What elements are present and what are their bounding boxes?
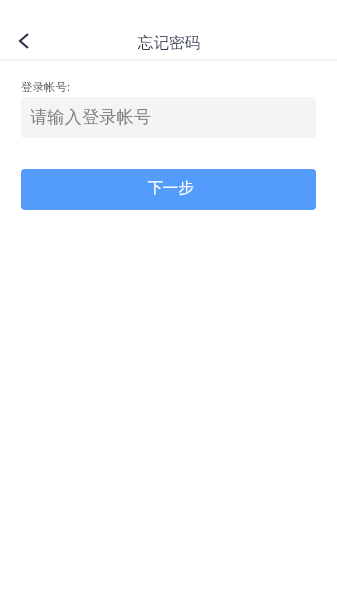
staticText: 忘记密码 [138,33,200,53]
button[interactable]: 请输入登录帐号 [21,97,316,138]
button[interactable]: 下一步 [21,169,316,210]
staticText: 请输入登录帐号 [30,106,152,128]
button[interactable]: Back [1,22,47,59]
staticText: 下一步 [147,178,194,197]
staticText: 登录帐号: [21,79,71,95]
